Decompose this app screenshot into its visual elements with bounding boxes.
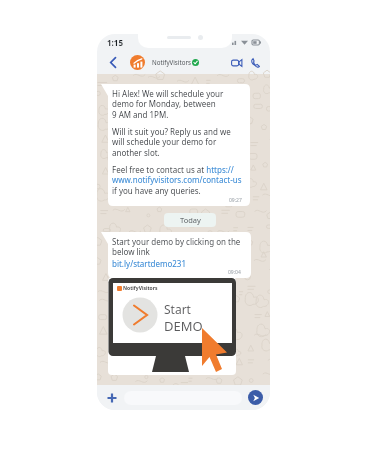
staticText: NotifyVisitors [123,285,158,292]
staticText: Hi Alex! We will schedule your demo for … [112,88,224,121]
staticText: NotifyVisitors [152,58,191,66]
button[interactable]: Send [248,390,263,405]
staticText: 09:27 [229,197,242,204]
staticText: Will it suit you? Reply us and we will s… [112,126,231,159]
staticText: DEMO [164,317,203,335]
button[interactable]: Call [246,54,263,71]
staticText: Today [180,215,201,225]
button[interactable]: Start demo video [108,277,236,375]
staticText: bit.ly/startdemo231 [112,258,187,269]
button[interactable]: Video call [228,54,245,71]
button[interactable]: Back [105,55,120,70]
button[interactable]: Today [164,213,216,227]
staticText: Start [164,301,191,317]
staticText: Start your demo by clicking on the below… [112,236,241,258]
staticText: 1:15 [107,37,123,48]
staticText: Feel free to contact us at https:// www.… [112,164,242,197]
staticText: 09:04 [228,269,241,276]
button[interactable]: Attach [104,390,120,406]
